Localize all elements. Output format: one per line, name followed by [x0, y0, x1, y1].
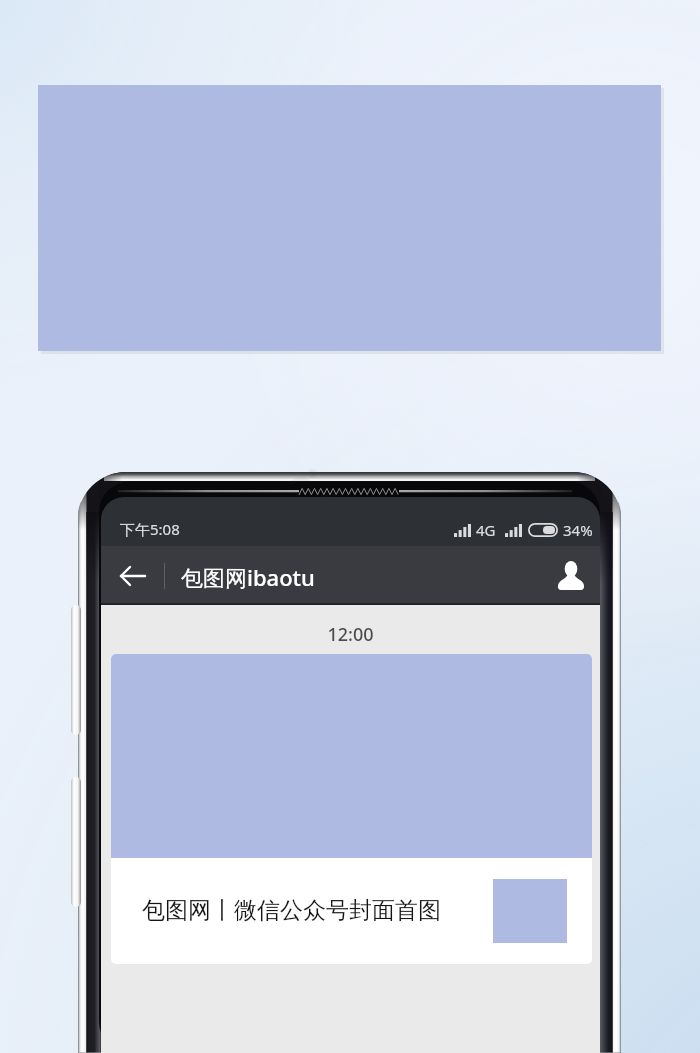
staticText: 下午5:08 — [120, 519, 180, 539]
staticText: 包图网 — [300, 478, 412, 594]
staticText: 12:00 — [101, 622, 600, 647]
staticText: 4G — [476, 520, 496, 540]
button[interactable]: Back — [101, 546, 164, 605]
button[interactable]: Contact profile — [542, 546, 600, 605]
staticText: 34% — [563, 520, 593, 540]
button[interactable]: 包图网丨微信公众号封面首图 — [111, 654, 592, 964]
staticText: 包图网ibaotu — [181, 562, 315, 592]
staticText: 包图网丨微信公众号封面首图 — [142, 896, 441, 925]
